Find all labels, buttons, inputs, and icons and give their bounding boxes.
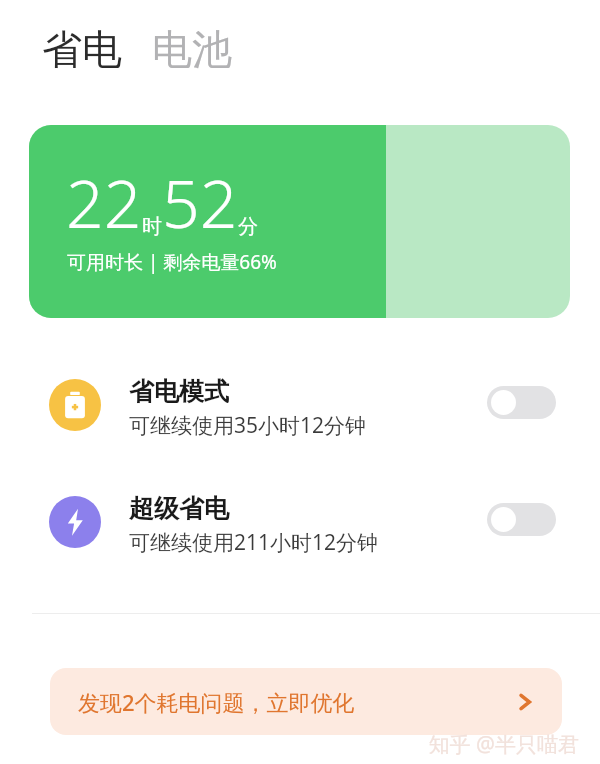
button[interactable]: Toggle 省电模式 bbox=[487, 386, 556, 419]
staticText: 发现2个耗电问题，立即优化 bbox=[78, 687, 514, 717]
staticText: 超级省电 bbox=[129, 493, 229, 524]
button[interactable]: 发现2个耗电问题，立即优化 bbox=[50, 668, 562, 735]
staticText: 省电 bbox=[42, 24, 122, 74]
staticText: 可用时长 | 剩余电量66% bbox=[67, 249, 277, 275]
staticText: 可继续使用35小时12分钟 bbox=[129, 411, 367, 440]
staticText: 电池 bbox=[152, 24, 232, 74]
button[interactable]: 22 bbox=[29, 125, 570, 318]
button[interactable]: 超级省电 bbox=[0, 485, 600, 559]
staticText: 22 bbox=[66, 157, 142, 247]
button[interactable]: 电池 bbox=[150, 22, 234, 76]
button[interactable]: Toggle 超级省电 bbox=[487, 503, 556, 536]
staticText: 知乎 @半只喵君 bbox=[428, 730, 579, 759]
staticText: 52 bbox=[162, 157, 238, 247]
staticText: 分 bbox=[238, 214, 258, 239]
staticText: 省电模式 bbox=[129, 376, 229, 407]
button[interactable]: 省电 bbox=[40, 22, 124, 76]
staticText: 可继续使用211小时12分钟 bbox=[129, 528, 379, 557]
staticText: 时 bbox=[142, 214, 162, 239]
button[interactable]: 省电模式 bbox=[0, 368, 600, 442]
